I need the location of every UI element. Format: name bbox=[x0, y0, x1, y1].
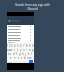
staticText: Search bbox=[12, 19, 21, 23]
staticText: q bbox=[7, 48, 9, 52]
staticText: m bbox=[29, 56, 32, 60]
staticText: search bbox=[8, 41, 15, 44]
button[interactable]: u bbox=[22, 48, 25, 52]
staticText: o bbox=[29, 48, 31, 52]
button[interactable]: Symbols bbox=[8, 60, 12, 63]
button[interactable]: Search bbox=[29, 60, 33, 63]
staticText: s bbox=[10, 52, 12, 56]
button[interactable]: z bbox=[9, 56, 13, 60]
staticText: 7 bbox=[23, 44, 25, 48]
staticText: 5 bbox=[17, 44, 19, 48]
staticText: Gboard bbox=[27, 7, 38, 11]
button[interactable]: f bbox=[15, 52, 18, 56]
staticText: r bbox=[14, 48, 16, 52]
button[interactable]: m bbox=[29, 56, 32, 60]
button[interactable]: g bbox=[18, 52, 21, 56]
button[interactable]: c bbox=[17, 56, 20, 60]
button[interactable]: b bbox=[23, 56, 26, 60]
button[interactable] bbox=[7, 37, 34, 40]
staticText: y bbox=[20, 48, 22, 52]
button[interactable] bbox=[7, 31, 34, 34]
button[interactable]: h bbox=[21, 52, 24, 56]
button[interactable]: i bbox=[25, 48, 28, 52]
staticText: u bbox=[23, 48, 25, 52]
staticText: p bbox=[32, 48, 34, 52]
staticText: a bbox=[8, 52, 10, 56]
button[interactable]: j bbox=[24, 52, 27, 56]
button[interactable]: y bbox=[19, 48, 22, 52]
staticText: i bbox=[26, 48, 27, 52]
button[interactable]: Back bbox=[8, 19, 11, 22]
button[interactable]: v bbox=[20, 56, 23, 60]
staticText: j bbox=[25, 52, 26, 56]
button[interactable]: t bbox=[16, 48, 19, 52]
staticText: c bbox=[18, 56, 20, 60]
staticText: 0 bbox=[32, 44, 34, 48]
staticText: w bbox=[9, 48, 11, 52]
staticText: d bbox=[13, 52, 15, 56]
button[interactable]: s bbox=[10, 52, 12, 56]
button[interactable]: 2 bbox=[9, 44, 11, 48]
button[interactable] bbox=[7, 40, 34, 41]
button[interactable]: n bbox=[26, 56, 29, 60]
button[interactable]: w bbox=[9, 48, 11, 52]
button[interactable]: 5 bbox=[16, 44, 19, 48]
button[interactable]: l bbox=[30, 52, 33, 56]
button[interactable]: k bbox=[27, 52, 30, 56]
staticText: 6 bbox=[20, 44, 22, 48]
staticText: n bbox=[27, 56, 29, 60]
button[interactable]: e bbox=[11, 48, 13, 52]
button[interactable]: 1 bbox=[7, 44, 9, 48]
staticText: f bbox=[16, 52, 17, 56]
button[interactable]: 4 bbox=[13, 44, 16, 48]
staticText: z bbox=[10, 56, 12, 60]
staticText: 2 bbox=[9, 44, 11, 48]
staticText: Search from any app with bbox=[15, 3, 50, 7]
staticText: t bbox=[17, 48, 18, 52]
button[interactable] bbox=[7, 28, 34, 31]
button[interactable]: 0 bbox=[31, 44, 34, 48]
button[interactable] bbox=[7, 25, 34, 28]
button[interactable]: o bbox=[28, 48, 31, 52]
button[interactable]: p bbox=[31, 48, 34, 52]
button[interactable]: d bbox=[12, 52, 15, 56]
staticText: 9 bbox=[29, 44, 31, 48]
staticText: ?123 bbox=[8, 61, 12, 63]
staticText: k bbox=[28, 52, 30, 56]
button[interactable]: 3 bbox=[11, 44, 13, 48]
staticText: 1 bbox=[7, 44, 9, 48]
button[interactable]: a bbox=[8, 52, 10, 56]
staticText: b bbox=[24, 56, 26, 60]
staticText: g bbox=[19, 52, 21, 56]
button[interactable]: 7 bbox=[22, 44, 25, 48]
staticText: h bbox=[22, 52, 24, 56]
button[interactable]: q bbox=[7, 48, 9, 52]
button[interactable]: 9 bbox=[28, 44, 31, 48]
staticText: x bbox=[14, 56, 16, 60]
staticText: v bbox=[21, 56, 23, 60]
staticText: 3 bbox=[11, 44, 13, 48]
staticText: 4 bbox=[14, 44, 16, 48]
button[interactable] bbox=[7, 34, 34, 37]
button[interactable]: r bbox=[13, 48, 16, 52]
staticText: e bbox=[11, 48, 13, 52]
button[interactable]: x bbox=[13, 56, 17, 60]
staticText: 8 bbox=[26, 44, 28, 48]
staticText: l bbox=[31, 52, 32, 56]
button[interactable]: 6 bbox=[19, 44, 22, 48]
button[interactable]: 8 bbox=[25, 44, 28, 48]
